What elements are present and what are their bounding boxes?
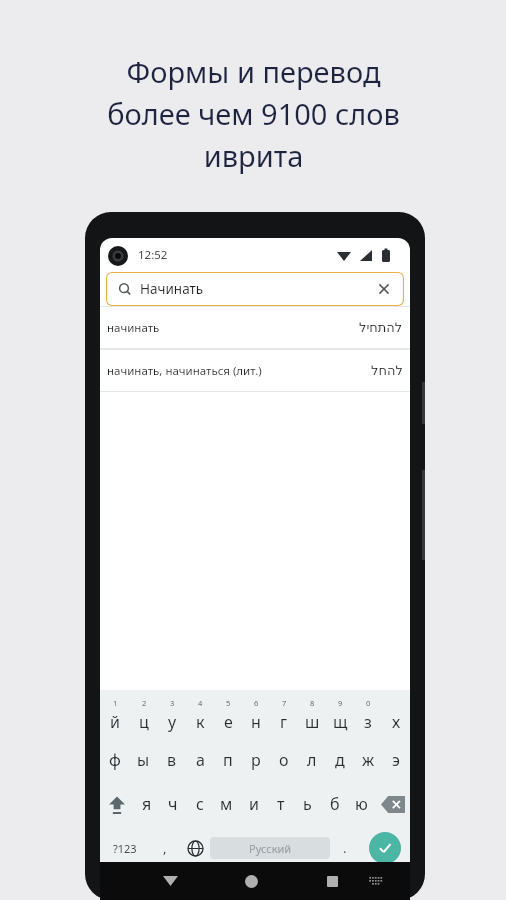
staticText: 12:52 [138, 247, 168, 263]
staticText: 5 [226, 698, 231, 708]
staticText: 6 [254, 698, 259, 708]
button[interactable]: о [270, 738, 298, 782]
button[interactable]: л [298, 738, 326, 782]
staticText: . [343, 839, 347, 857]
staticText: 0 [366, 698, 371, 708]
staticText: е [224, 711, 233, 733]
staticText: з [364, 711, 372, 733]
button[interactable]: ф [100, 738, 129, 782]
staticText: к [196, 711, 205, 733]
staticText: 7 [282, 698, 287, 708]
button[interactable]: 0 [354, 692, 382, 738]
staticText: т [277, 793, 285, 815]
button[interactable]: Начинать [106, 272, 404, 306]
button[interactable]: 9 [326, 692, 354, 738]
button[interactable]: 8 [298, 692, 326, 738]
staticText: и [249, 793, 259, 815]
button[interactable]: т [267, 782, 294, 826]
button[interactable]: и [240, 782, 267, 826]
staticText: х [392, 711, 401, 733]
staticText: ж [362, 749, 375, 771]
staticText: в [167, 749, 177, 771]
button[interactable]: Shift [100, 782, 134, 826]
staticText: я [142, 793, 152, 815]
button[interactable]: п [214, 738, 242, 782]
button[interactable]: Backspace [375, 782, 410, 826]
button[interactable]: 4 [186, 692, 214, 738]
button[interactable]: д [326, 738, 354, 782]
staticText: 9 [338, 698, 343, 708]
staticText: 2 [142, 698, 147, 708]
staticText: г [280, 711, 288, 733]
staticText: 1 [113, 698, 118, 708]
button[interactable]: ч [160, 782, 186, 826]
button[interactable]: Recents [311, 862, 354, 900]
staticText: д [335, 749, 345, 771]
button[interactable]: р [242, 738, 270, 782]
staticText: 4 [198, 698, 203, 708]
staticText: а [196, 749, 205, 771]
staticText: ы [137, 749, 150, 771]
staticText: начинать [107, 320, 160, 336]
staticText: начинать, начинаться (лит.) [107, 363, 262, 379]
staticText: Начинать [140, 280, 204, 298]
button[interactable]: Enter [369, 832, 401, 864]
button[interactable]: 7 [270, 692, 298, 738]
other: Keyboard active [354, 862, 397, 900]
staticText: ь [303, 793, 312, 815]
staticText: м [220, 793, 233, 815]
staticText: у [168, 711, 177, 733]
staticText: Формы и перевод более чем 9100 слов иври… [107, 52, 400, 175]
button[interactable]: начинать [100, 307, 410, 348]
button[interactable]: ь [294, 782, 321, 826]
button[interactable]: Home [230, 862, 273, 900]
button[interactable]: с [186, 782, 213, 826]
staticText: с [196, 793, 204, 815]
staticText: р [251, 749, 261, 771]
staticText: б [330, 793, 340, 815]
staticText: ?123 [113, 841, 137, 856]
button[interactable]: в [158, 738, 186, 782]
button[interactable]: ы [129, 738, 158, 782]
staticText: להחל [371, 363, 403, 378]
button[interactable]: 6 [242, 692, 270, 738]
button[interactable]: начинать, начинаться (лит.) [100, 350, 410, 391]
staticText: э [392, 749, 400, 771]
staticText: н [251, 711, 261, 733]
staticText: ю [355, 793, 368, 815]
button[interactable]: Change language [180, 826, 210, 870]
button[interactable]: э [382, 738, 410, 782]
button[interactable]: ж [354, 738, 382, 782]
staticText: п [223, 749, 233, 771]
button[interactable]: 3 [158, 692, 186, 738]
staticText: Русский [249, 841, 292, 856]
button[interactable]: х [382, 692, 410, 738]
staticText: ч [168, 793, 178, 815]
button[interactable]: 2 [129, 692, 158, 738]
button[interactable]: , [150, 826, 180, 870]
staticText: ц [139, 711, 149, 733]
button[interactable]: а [186, 738, 214, 782]
button[interactable]: Back [149, 862, 192, 900]
button[interactable]: я [134, 782, 160, 826]
button[interactable]: б [321, 782, 348, 826]
staticText: й [110, 711, 120, 733]
button[interactable]: м [213, 782, 240, 826]
staticText: ф [109, 749, 121, 771]
staticText: щ [333, 711, 348, 733]
button[interactable]: Русский [210, 837, 330, 859]
button[interactable]: ю [348, 782, 375, 826]
staticText: о [279, 749, 289, 771]
staticText: ш [305, 711, 320, 733]
staticText: , [163, 839, 167, 857]
button[interactable]: . [330, 826, 360, 870]
staticText: 3 [170, 698, 175, 708]
staticText: л [307, 749, 317, 771]
button[interactable]: ?123 [100, 826, 150, 870]
button[interactable]: 1 [100, 692, 129, 738]
staticText: להתחיל [359, 320, 403, 335]
button[interactable]: 5 [214, 692, 242, 738]
staticText: 8 [310, 698, 315, 708]
